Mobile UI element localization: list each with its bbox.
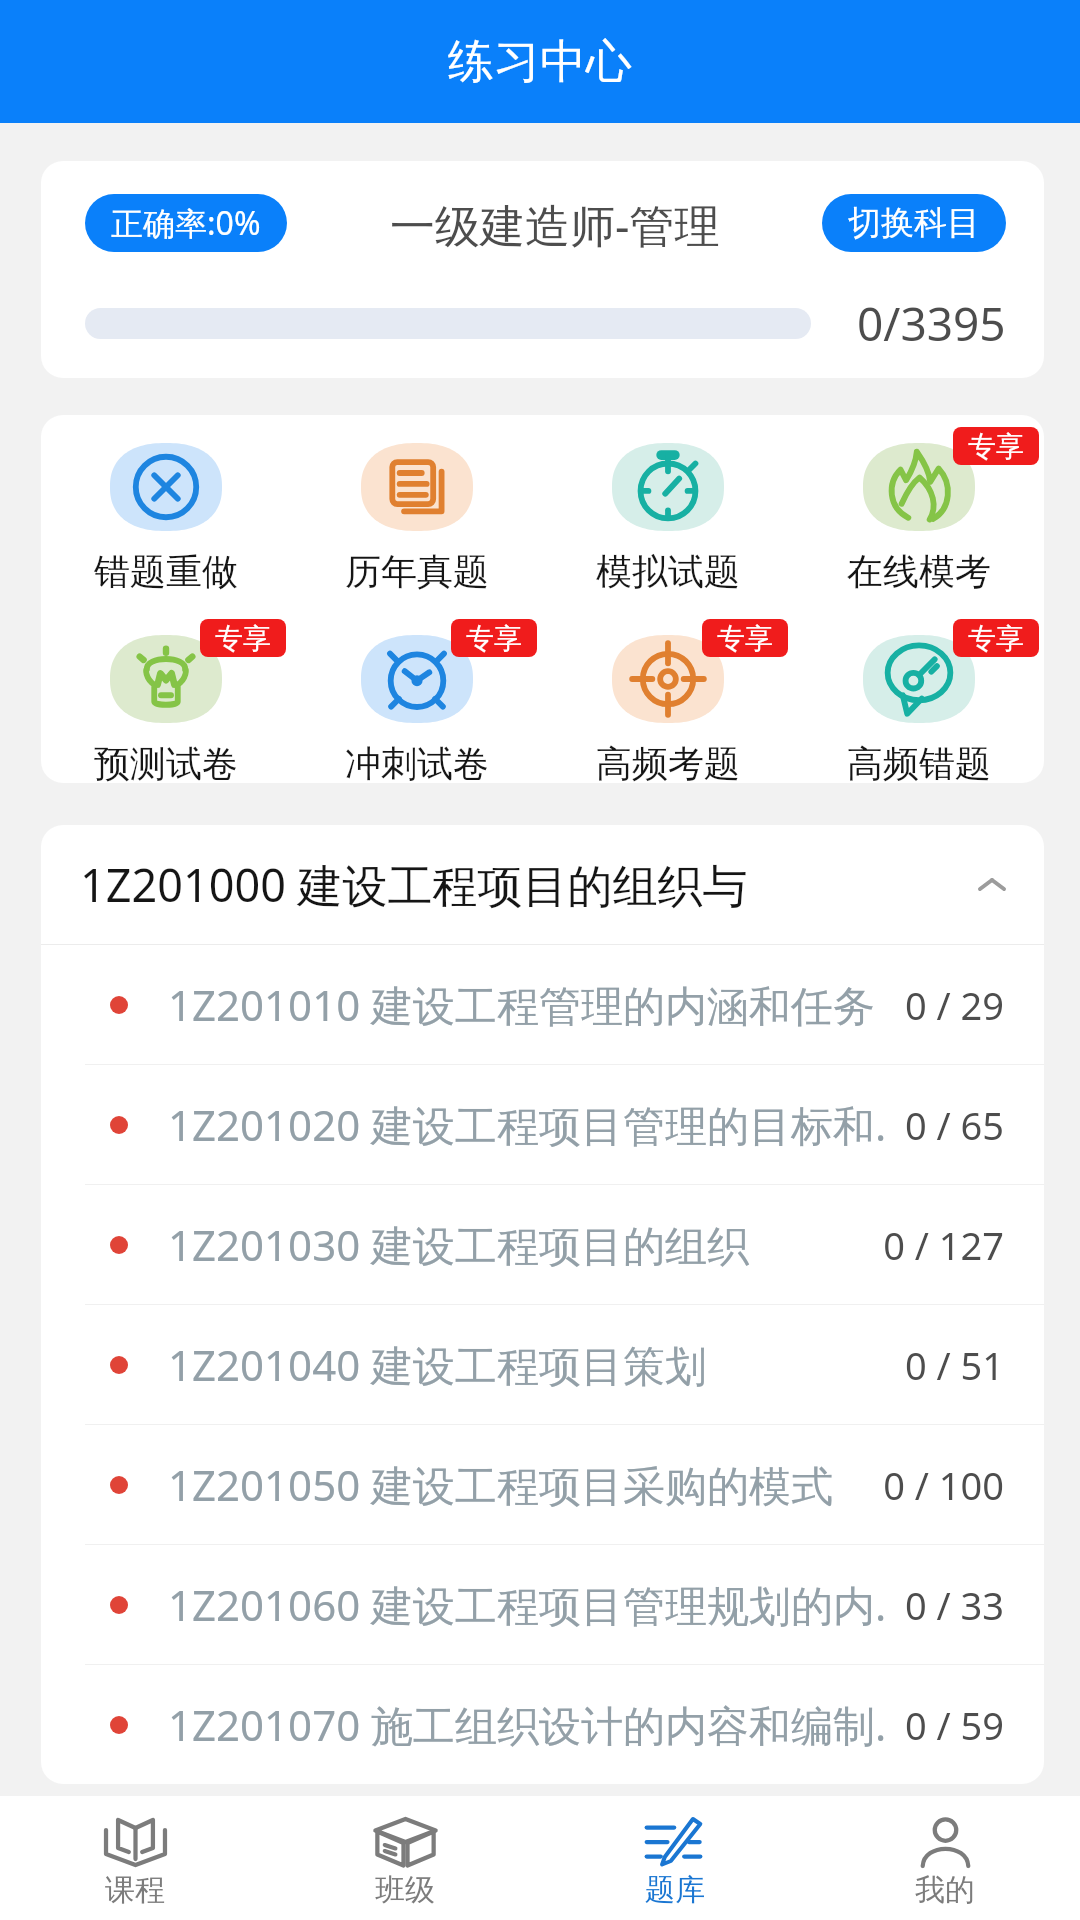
button[interactable]: 切换科目 bbox=[822, 194, 1006, 252]
staticText: 1Z201040 建设工程项目策划 bbox=[168, 1336, 884, 1393]
staticText: 1Z201050 建设工程项目采购的模式 bbox=[168, 1456, 883, 1513]
button[interactable]: 专享 bbox=[793, 443, 1044, 594]
button[interactable]: 1Z201040 建设工程项目策划 bbox=[41, 1305, 1044, 1424]
staticText: 切换科目 bbox=[848, 202, 980, 244]
staticText: 专享 bbox=[717, 621, 773, 656]
staticText: 我的 bbox=[915, 1871, 975, 1909]
staticText: 1Z201030 建设工程项目的组织 bbox=[168, 1216, 883, 1273]
staticText: 专享 bbox=[968, 621, 1024, 656]
staticText: 专享 bbox=[215, 621, 271, 656]
staticText: 0 / 29 bbox=[884, 979, 1004, 1031]
button[interactable]: 错题重做 bbox=[41, 443, 291, 594]
staticText: 冲刺试卷 bbox=[345, 741, 489, 783]
staticText: 错题重做 bbox=[94, 549, 238, 594]
staticText: 1Z201010 建设工程管理的内涵和任务 bbox=[168, 976, 884, 1033]
button[interactable]: 我的 bbox=[810, 1796, 1080, 1920]
staticText: 预测试卷 bbox=[94, 741, 238, 783]
button[interactable]: 班级 bbox=[270, 1796, 540, 1920]
staticText: 班级 bbox=[375, 1871, 435, 1909]
staticText: 专享 bbox=[466, 621, 522, 656]
staticText: 正确率:0% bbox=[111, 201, 261, 245]
button[interactable]: 1Z201030 建设工程项目的组织 bbox=[41, 1185, 1044, 1304]
button[interactable]: 历年真题 bbox=[291, 443, 542, 594]
staticText: 1Z201000 建设工程项目的组织与 bbox=[80, 854, 978, 915]
staticText: 0 / 65 bbox=[884, 1099, 1004, 1151]
staticText: 0 / 100 bbox=[883, 1459, 1004, 1511]
staticText: 0 / 59 bbox=[884, 1699, 1004, 1751]
staticText: 0/3395 bbox=[857, 292, 1006, 355]
button[interactable]: 专享 bbox=[291, 635, 542, 783]
button[interactable]: 正确率:0% bbox=[85, 194, 287, 252]
button[interactable]: 模拟试题 bbox=[542, 443, 793, 594]
staticText: 在线模考 bbox=[847, 549, 991, 594]
staticText: 0 / 33 bbox=[884, 1579, 1004, 1631]
staticText: 高频考题 bbox=[596, 741, 740, 783]
staticText: 1Z201060 建设工程项目管理规划的内... bbox=[168, 1576, 884, 1633]
button[interactable]: 专享 bbox=[542, 635, 793, 783]
staticText: 专享 bbox=[968, 429, 1024, 464]
button[interactable]: 1Z201050 建设工程项目采购的模式 bbox=[41, 1425, 1044, 1544]
staticText: 练习中心 bbox=[448, 33, 632, 91]
button[interactable]: 题库 bbox=[540, 1796, 810, 1920]
staticText: 历年真题 bbox=[345, 549, 489, 594]
button[interactable]: 1Z201020 建设工程项目管理的目标和... bbox=[41, 1065, 1044, 1184]
staticText: 0 / 51 bbox=[884, 1339, 1004, 1391]
other: Collapse section bbox=[978, 878, 1006, 891]
staticText: 题库 bbox=[645, 1871, 705, 1909]
staticText: 课程 bbox=[105, 1871, 165, 1909]
button[interactable]: 1Z201010 建设工程管理的内涵和任务 bbox=[41, 945, 1044, 1064]
button[interactable]: 1Z201060 建设工程项目管理规划的内... bbox=[41, 1545, 1044, 1664]
button[interactable]: 1Z201000 建设工程项目的组织与 bbox=[41, 825, 1044, 944]
staticText: 1Z201070 施工组织设计的内容和编制... bbox=[168, 1696, 884, 1753]
staticText: 1Z201020 建设工程项目管理的目标和... bbox=[168, 1096, 884, 1153]
button[interactable]: 专享 bbox=[41, 635, 291, 783]
button[interactable]: 1Z201070 施工组织设计的内容和编制... bbox=[41, 1665, 1044, 1784]
staticText: 一级建造师-管理 bbox=[390, 194, 720, 252]
staticText: 模拟试题 bbox=[596, 549, 740, 594]
staticText: 高频错题 bbox=[847, 741, 991, 783]
button[interactable]: 课程 bbox=[0, 1796, 270, 1920]
staticText: 0 / 127 bbox=[883, 1219, 1004, 1271]
button[interactable]: 专享 bbox=[793, 635, 1044, 783]
